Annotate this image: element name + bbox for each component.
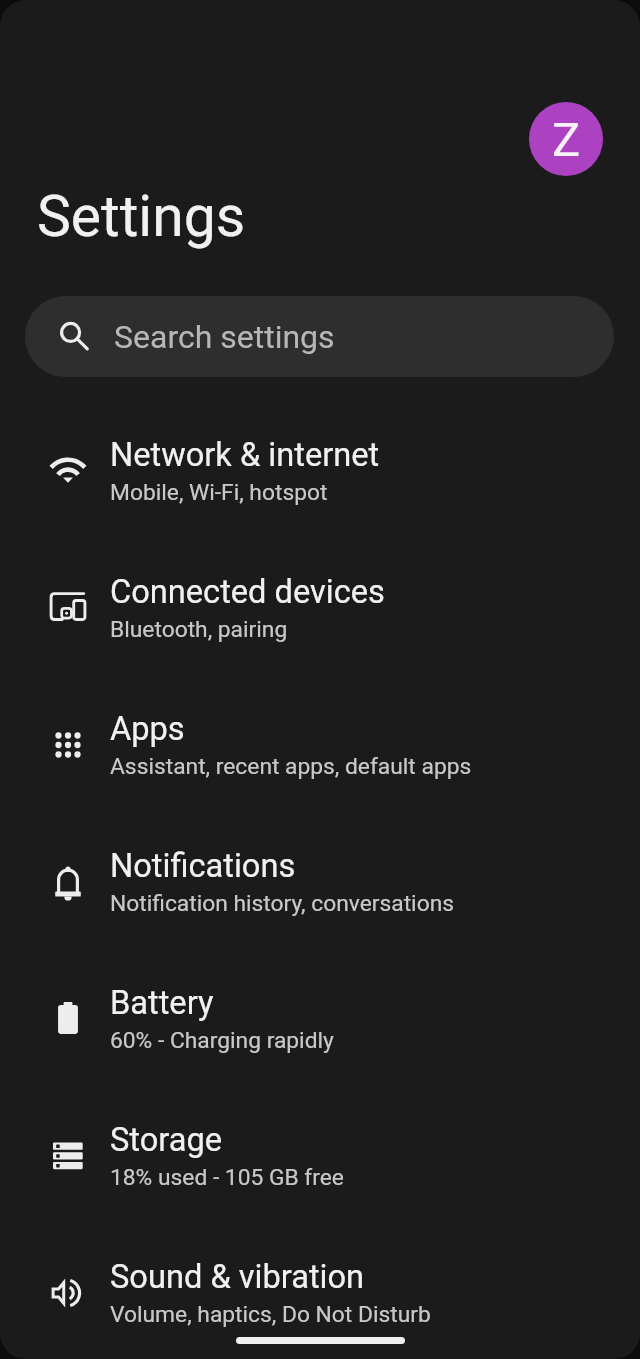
button[interactable]: Account [529,102,603,176]
staticText: Storage [110,1121,223,1159]
button[interactable]: Connected devices [0,539,640,676]
staticText: Network & internet [110,436,380,474]
button[interactable]: Storage [0,1087,640,1224]
staticText: 60% - Charging rapidly [110,1027,334,1054]
staticText: Apps [110,710,185,748]
staticText: Mobile, Wi-Fi, hotspot [110,479,328,506]
button[interactable]: Search settings [25,296,614,377]
staticText: Settings [37,183,246,250]
staticText: Sound & vibration [110,1258,365,1296]
button[interactable]: Sound & vibration [0,1224,640,1359]
button[interactable]: Apps [0,676,640,813]
button[interactable]: Network & internet [0,402,640,539]
staticText: Z [552,112,581,167]
staticText: Search settings [114,318,335,356]
button[interactable]: Battery [0,950,640,1087]
staticText: Notification history, conversations [110,890,455,917]
staticText: Assistant, recent apps, default apps [110,753,472,780]
staticText: Bluetooth, pairing [110,616,288,643]
staticText: Volume, haptics, Do Not Disturb [110,1301,431,1328]
button[interactable]: Notifications [0,813,640,950]
staticText: Notifications [110,847,296,885]
staticText: 18% used - 105 GB free [110,1164,344,1191]
staticText: Connected devices [110,573,385,611]
staticText: Battery [110,984,214,1022]
